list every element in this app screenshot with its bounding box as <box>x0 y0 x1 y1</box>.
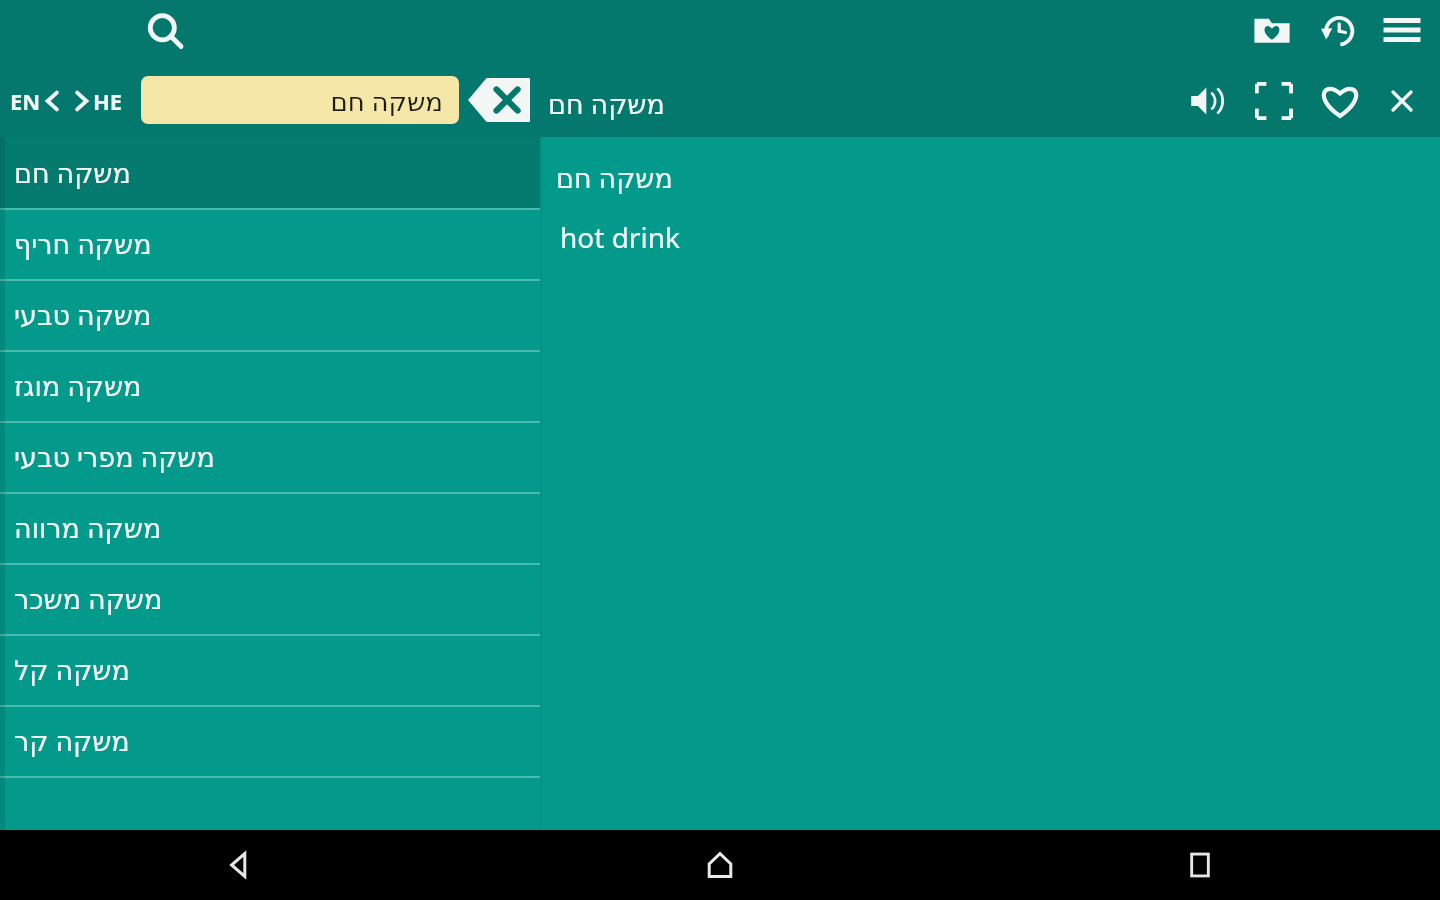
button[interactable]: Pronounce <box>1180 73 1236 129</box>
button[interactable]: משקה חם <box>141 76 459 124</box>
button[interactable]: משקה חם <box>0 137 540 208</box>
button[interactable]: Search <box>136 2 192 58</box>
button[interactable]: Home <box>480 830 960 900</box>
button[interactable]: Favourites folder <box>1244 2 1300 58</box>
staticText: משקה משכר <box>14 580 163 617</box>
staticText: משקה חם <box>330 83 443 118</box>
staticText: משקה טבעי <box>14 296 152 333</box>
staticText: HE <box>93 86 123 116</box>
button[interactable]: משקה משכר <box>0 563 540 634</box>
button[interactable]: Close <box>1378 77 1426 125</box>
button[interactable]: Add to favourites <box>1312 73 1368 129</box>
button[interactable]: משקה קר <box>0 705 540 776</box>
staticText: משקה חם <box>556 159 673 196</box>
button[interactable]: משקה קל <box>0 634 540 705</box>
button[interactable]: Back <box>0 830 480 900</box>
button[interactable]: Fullscreen <box>1246 73 1302 129</box>
staticText: hot drink <box>560 218 680 256</box>
staticText: משקה חם <box>548 85 665 122</box>
staticText: משקה חריף <box>14 225 152 262</box>
button[interactable]: משקה מוגז <box>0 350 540 421</box>
button[interactable]: משקה חריף <box>0 208 540 279</box>
button[interactable]: משקה מפרי טבעי <box>0 421 540 492</box>
button[interactable]: משקה מרווה <box>0 492 540 563</box>
staticText: משקה מפרי טבעי <box>14 438 215 475</box>
staticText: משקה מוגז <box>14 367 142 404</box>
staticText: משקה קר <box>14 722 130 759</box>
button[interactable]: משקה טבעי <box>0 279 540 350</box>
staticText: משקה קל <box>14 651 130 688</box>
staticText: EN <box>10 86 41 116</box>
button[interactable]: History <box>1310 2 1366 58</box>
button[interactable]: Menu <box>1374 2 1430 58</box>
button[interactable]: Clear <box>468 78 530 122</box>
button[interactable]: EN <box>10 86 123 116</box>
staticText: משקה חם <box>14 154 131 191</box>
button[interactable]: Recents <box>960 830 1440 900</box>
staticText: משקה מרווה <box>14 509 162 546</box>
